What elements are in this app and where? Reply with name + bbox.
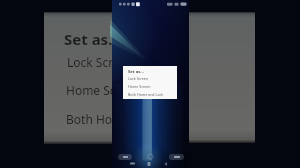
button[interactable]: Back — [161, 160, 170, 167]
button[interactable]: Home — [144, 160, 153, 167]
button[interactable]: Recents — [128, 160, 137, 167]
button[interactable]: Unlock — [147, 153, 154, 160]
button[interactable]: Lock Scr — [67, 54, 115, 70]
button[interactable]: Both Ho — [66, 111, 114, 127]
button[interactable]: Set as. — [64, 29, 114, 49]
button[interactable]: Home Sc — [66, 82, 114, 98]
button[interactable]: Camera shortcut — [118, 154, 132, 160]
button[interactable]: Both Home and Lock — [123, 91, 177, 99]
button[interactable]: Lock Screen — [123, 75, 177, 83]
button[interactable]: Home Screen — [123, 83, 177, 91]
button[interactable]: Phone shortcut — [169, 154, 184, 160]
staticText: Set as... — [128, 69, 144, 75]
